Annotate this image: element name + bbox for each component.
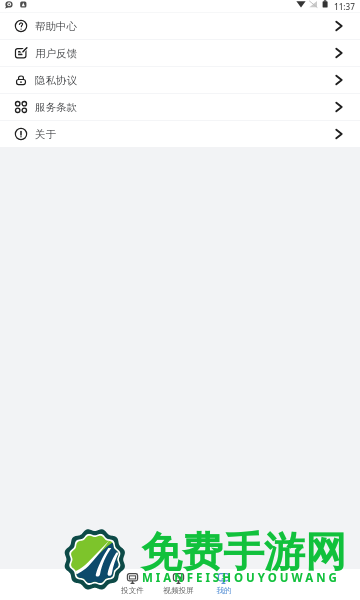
staticText: 帮助中心 xyxy=(35,20,77,33)
button[interactable]: 服务条款 xyxy=(0,94,360,120)
staticText: 免费手游网 xyxy=(141,527,346,579)
button[interactable]: 用户反馈 xyxy=(0,40,360,66)
staticText: 服务条款 xyxy=(35,101,77,114)
staticText: 11:37 xyxy=(334,1,355,12)
staticText: 关于 xyxy=(35,128,56,141)
staticText: 隐私协议 xyxy=(35,74,77,87)
button[interactable]: 关于 xyxy=(0,121,360,147)
button[interactable]: 视频投屏 xyxy=(156,573,201,596)
staticText: 用户反馈 xyxy=(35,47,77,60)
staticText: 投文件 xyxy=(121,586,144,596)
button[interactable]: 投文件 xyxy=(109,573,156,596)
button[interactable]: 帮助中心 xyxy=(0,13,360,39)
staticText: 我的 xyxy=(216,586,232,596)
staticText: 视频投屏 xyxy=(163,586,194,596)
button[interactable]: 我的 xyxy=(201,573,246,596)
staticText: MIANFEISHOUYOUWANG xyxy=(142,570,340,586)
button[interactable]: 隐私协议 xyxy=(0,67,360,93)
